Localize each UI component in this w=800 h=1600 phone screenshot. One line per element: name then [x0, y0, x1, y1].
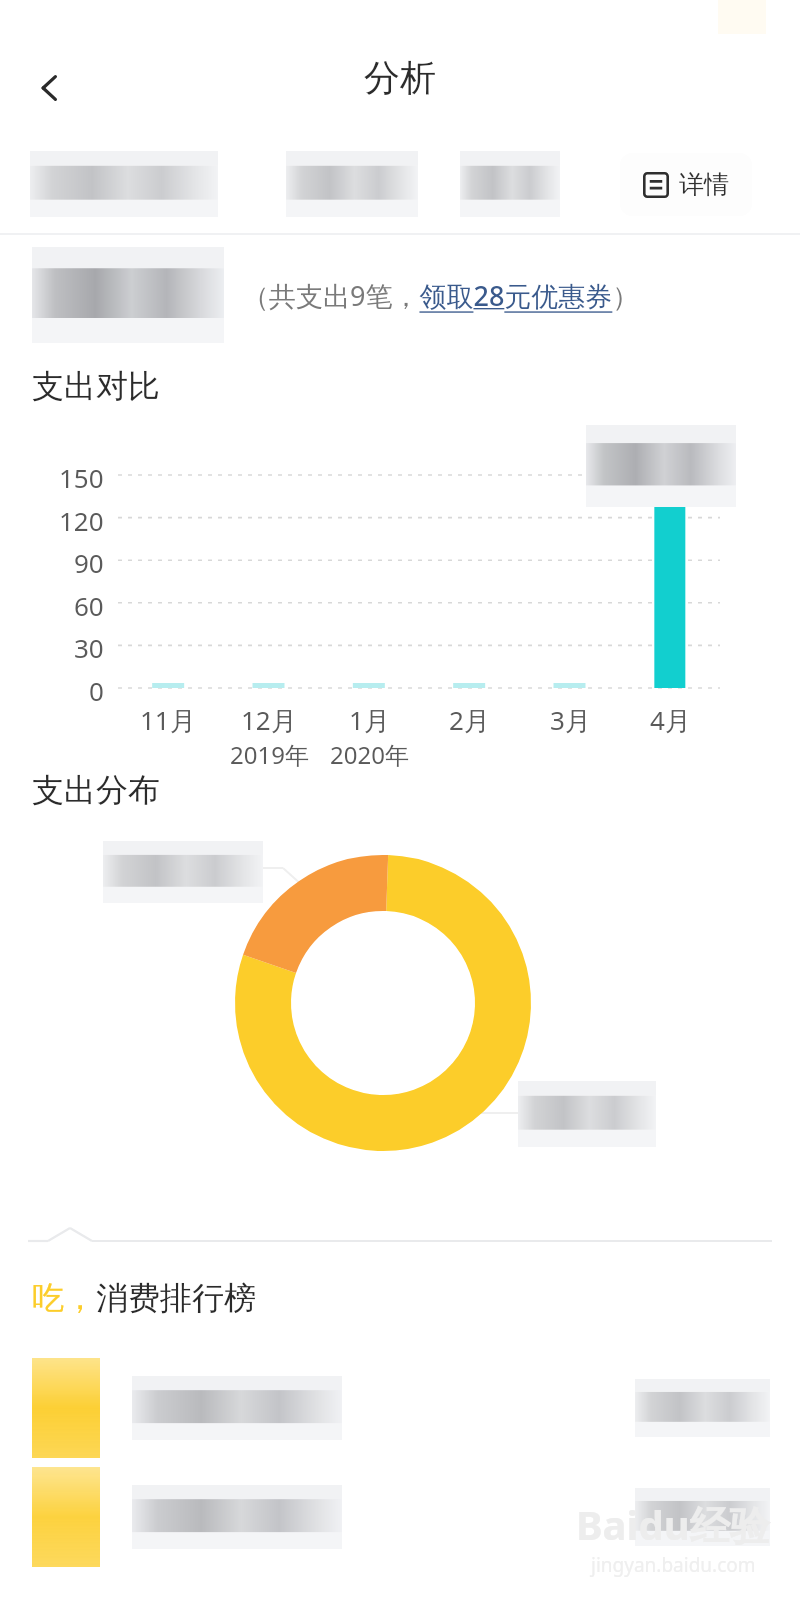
button[interactable]: [0, 1464, 800, 1569]
button[interactable]: [30, 151, 218, 217]
staticText: 12月: [241, 702, 297, 738]
button[interactable]: [286, 151, 418, 217]
button[interactable]: [0, 1355, 800, 1460]
staticText: Baidu经验: [576, 1497, 770, 1552]
staticText: 分析: [364, 55, 436, 100]
staticText: 30: [74, 630, 104, 665]
staticText: 60: [74, 588, 104, 623]
staticText: （共支出9笔，领取28元优惠券）: [242, 277, 640, 314]
staticText: 2月: [449, 702, 490, 738]
staticText: 1月: [349, 702, 390, 738]
staticText: 支出对比: [32, 366, 160, 406]
staticText: 2020年: [330, 738, 409, 771]
staticText: 0: [89, 673, 104, 708]
staticText: 支出分布: [32, 770, 160, 810]
staticText: 150: [59, 460, 104, 495]
button[interactable]: [460, 151, 560, 217]
staticText: 吃，: [32, 1278, 96, 1318]
staticText: 4月: [650, 702, 691, 738]
staticText: 详情: [679, 169, 729, 200]
staticText: jingyan.baidu.com: [591, 1552, 756, 1578]
staticText: 120: [59, 503, 104, 538]
button[interactable]: 详情: [620, 153, 752, 216]
staticText: 2019年: [230, 738, 309, 771]
button[interactable]: Back: [18, 56, 82, 120]
staticText: 消费排行榜: [96, 1278, 256, 1318]
staticText: 90: [74, 545, 104, 580]
staticText: 11月: [140, 702, 196, 738]
staticText: 3月: [550, 702, 591, 738]
